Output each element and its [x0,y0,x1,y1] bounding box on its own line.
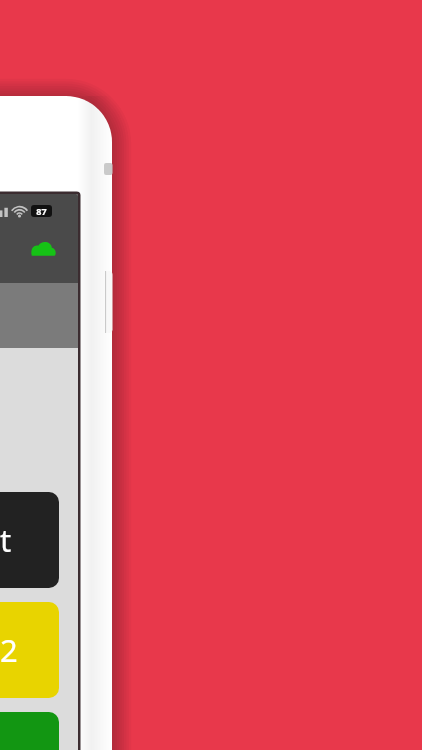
staticText: 2 [0,629,18,671]
button[interactable] [0,712,59,750]
button[interactable]: Cloud [29,238,57,258]
staticText: t [0,519,12,561]
staticText: 87 [36,205,47,217]
button[interactable]: t [0,492,59,588]
button[interactable]: 2 [0,602,59,698]
